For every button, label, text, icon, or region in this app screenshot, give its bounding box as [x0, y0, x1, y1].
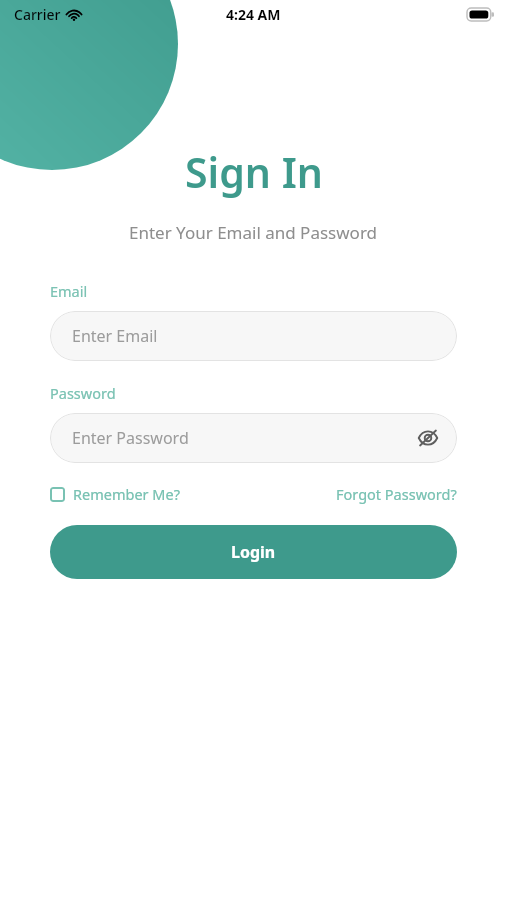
button[interactable]: Remember Me?	[50, 480, 180, 508]
staticText: Remember Me?	[73, 484, 180, 504]
staticText: 4:24 AM	[226, 5, 281, 24]
staticText: Email	[50, 281, 88, 301]
staticText: Login	[231, 541, 276, 563]
staticText: Enter Email	[72, 325, 158, 347]
staticText: Enter Your Email and Password	[129, 221, 378, 244]
staticText: Enter Password	[72, 427, 189, 449]
staticText: Sign In	[185, 144, 323, 200]
button[interactable]: Show password	[413, 423, 443, 453]
button[interactable]: Login	[50, 525, 457, 579]
staticText: Forgot Password?	[336, 484, 457, 504]
button[interactable]: Enter Email	[50, 311, 457, 361]
button[interactable]: Enter Password	[50, 413, 457, 463]
button[interactable]: Forgot Password?	[336, 480, 457, 508]
staticText: Password	[50, 383, 116, 403]
staticText: Carrier	[14, 5, 61, 24]
